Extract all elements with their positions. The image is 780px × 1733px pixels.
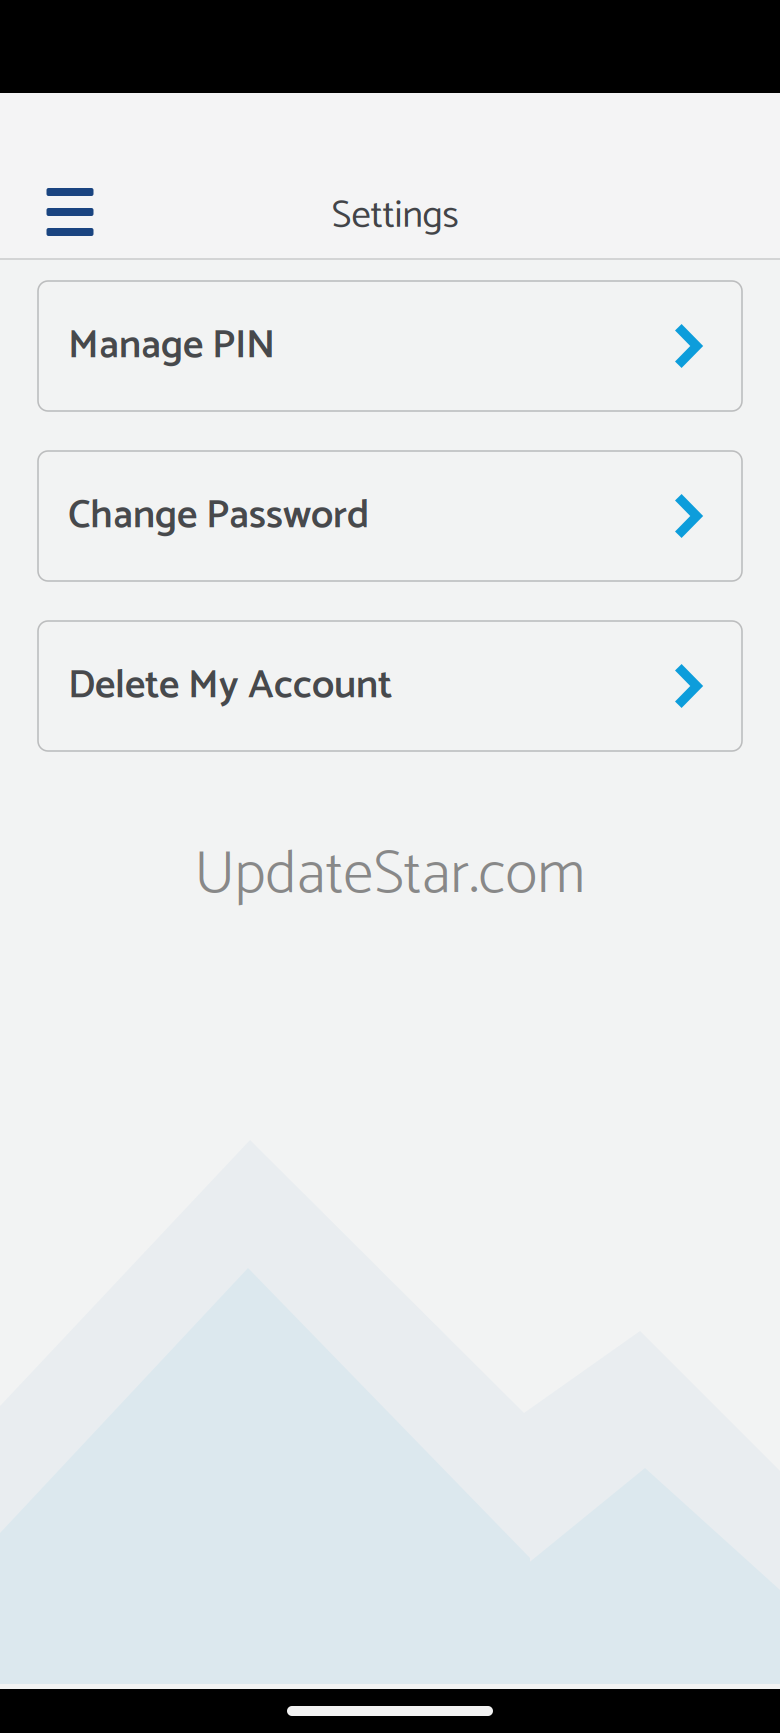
staticText: Change Password — [68, 483, 369, 549]
staticText: Delete My Account — [68, 653, 392, 719]
staticText: Manage PIN — [68, 313, 275, 379]
button[interactable]: Change Password — [38, 451, 742, 581]
staticText: UpdateStar.com — [194, 826, 585, 924]
button[interactable]: Delete My Account — [38, 621, 742, 751]
button[interactable]: Manage PIN — [38, 281, 742, 411]
button[interactable]: Menu — [0, 164, 140, 260]
staticText: Settings — [331, 184, 458, 248]
